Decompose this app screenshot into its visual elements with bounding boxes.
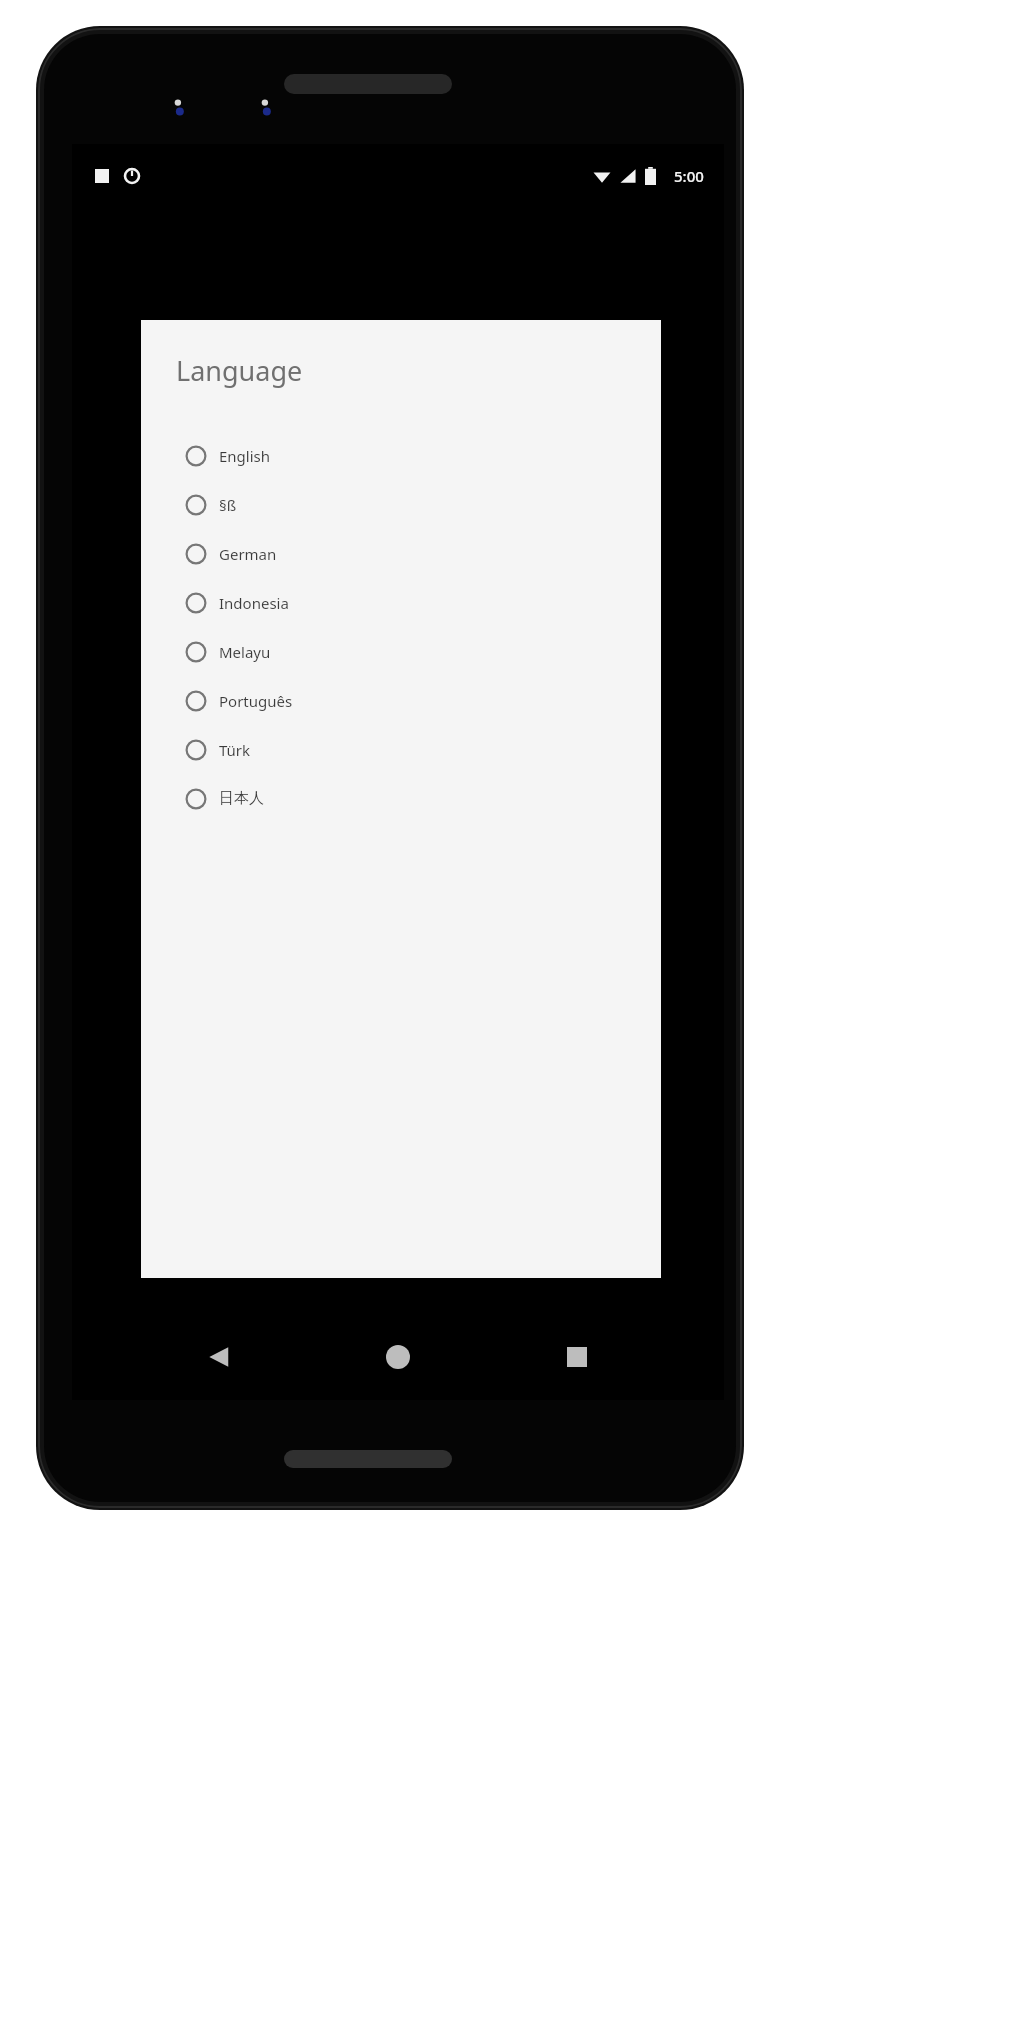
staticText: 5:00: [674, 166, 704, 186]
button[interactable]: Back: [187, 1325, 251, 1389]
button[interactable]: Português: [141, 676, 661, 725]
staticText: §ß: [219, 495, 237, 515]
staticText: Language: [176, 352, 303, 389]
button[interactable]: Recent apps: [545, 1325, 609, 1389]
button[interactable]: Türk: [141, 725, 661, 774]
staticText: Indonesia: [219, 593, 289, 613]
staticText: 日本人: [219, 789, 264, 808]
staticText: German: [219, 544, 277, 564]
button[interactable]: Home: [366, 1325, 430, 1389]
staticText: Português: [219, 691, 293, 711]
button[interactable]: §ß: [141, 480, 661, 529]
button[interactable]: Indonesia: [141, 578, 661, 627]
staticText: Melayu: [219, 642, 271, 662]
button[interactable]: German: [141, 529, 661, 578]
button[interactable]: Melayu: [141, 627, 661, 676]
staticText: English: [219, 446, 271, 466]
staticText: Türk: [219, 740, 251, 760]
button[interactable]: English: [141, 431, 661, 480]
button[interactable]: 日本人: [141, 774, 661, 823]
